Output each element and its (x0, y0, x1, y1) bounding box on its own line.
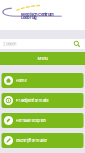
button[interactable]: Menu (0, 52, 85, 65)
button[interactable]: Praktijkinformatie (1, 93, 83, 108)
staticText: Leebrug (21, 15, 37, 20)
staticText: Zoeken (3, 42, 16, 46)
staticText: Medisch Centrum (21, 12, 54, 17)
button[interactable]: Inschrijfformulier (1, 133, 83, 148)
button[interactable]: Zoeken (0, 39, 85, 49)
staticText: Home (15, 78, 26, 83)
staticText: Inschrijfformulier (15, 138, 47, 143)
button[interactable]: Herhaalrecepten (1, 113, 83, 128)
staticText: Herhaalrecepten (15, 118, 45, 123)
button[interactable]: Home (1, 73, 83, 88)
staticText: Praktijkinformatie (15, 98, 48, 103)
staticText: Menu (37, 56, 47, 61)
